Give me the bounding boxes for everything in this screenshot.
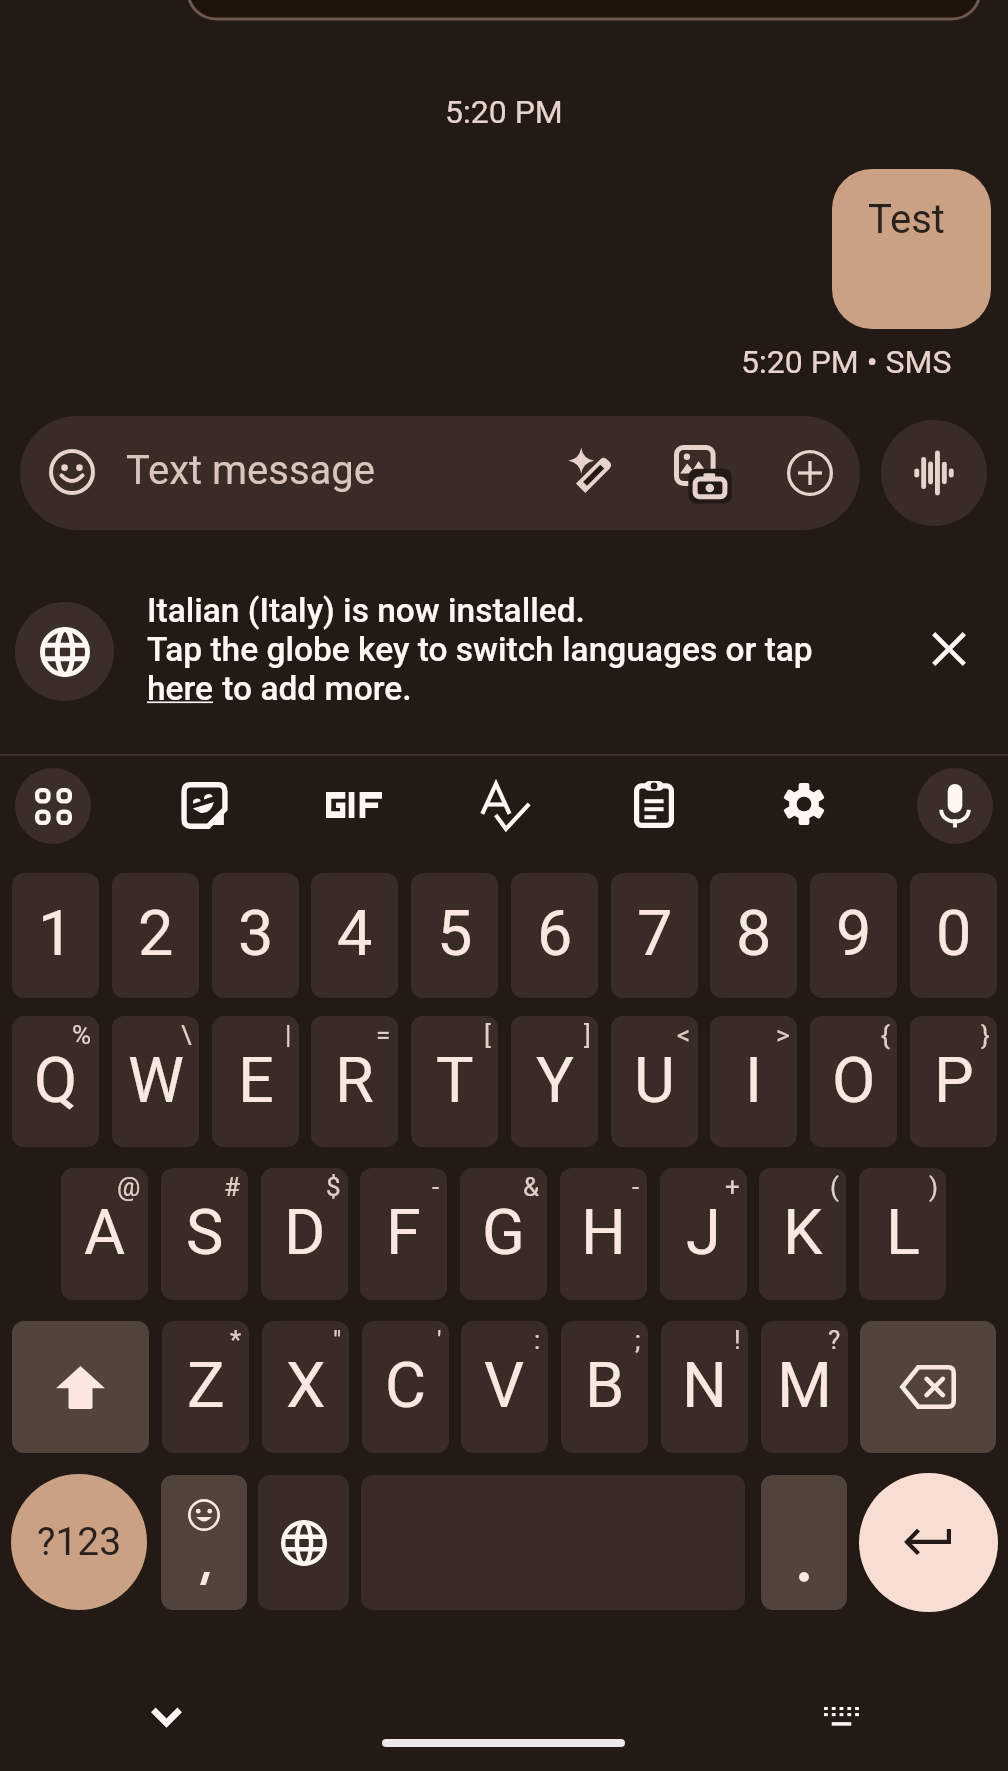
button[interactable]: E [212, 1016, 299, 1147]
button[interactable]: O [810, 1016, 897, 1147]
button[interactable]: W [112, 1016, 199, 1147]
staticText: > [776, 1020, 790, 1050]
button[interactable]: 5 [411, 873, 498, 998]
staticText: D [284, 1196, 326, 1270]
button[interactable]: H [560, 1168, 647, 1300]
staticText: G [482, 1196, 525, 1270]
staticText: 9 [836, 897, 872, 971]
button[interactable]: Voice message [881, 420, 987, 526]
staticText: Test [868, 196, 945, 243]
staticText: Text message [126, 447, 376, 494]
staticText: 6 [537, 897, 573, 971]
button[interactable]: 0 [910, 873, 997, 998]
staticText: E [238, 1044, 274, 1118]
button[interactable]: Switch language [258, 1475, 349, 1610]
button[interactable]: Emoji [49, 449, 95, 495]
button[interactable]: U [611, 1016, 698, 1147]
button[interactable]: C [362, 1321, 449, 1453]
button[interactable]: P [910, 1016, 997, 1147]
staticText: 5 [437, 897, 473, 971]
button[interactable]: A [61, 1168, 148, 1300]
button[interactable]: X [262, 1321, 349, 1453]
button[interactable]: Switch keyboard [824, 1707, 859, 1728]
button[interactable]: D [261, 1168, 348, 1300]
staticText: % [72, 1020, 92, 1050]
button[interactable]: 2 [112, 873, 199, 998]
button[interactable]: 4 [311, 873, 398, 998]
button[interactable]: S [161, 1168, 248, 1300]
button[interactable]: Voice input [917, 768, 993, 844]
button[interactable]: L [859, 1168, 946, 1300]
button[interactable]: Magic compose [568, 446, 617, 495]
button[interactable]: N [661, 1321, 748, 1453]
staticText: F [386, 1196, 421, 1270]
staticText: " [333, 1325, 342, 1355]
button[interactable]: Settings [783, 783, 825, 825]
staticText: ] [584, 1020, 591, 1050]
button[interactable]: Q [12, 1016, 99, 1147]
staticText: ; [635, 1325, 641, 1355]
staticText: U [634, 1044, 675, 1118]
button[interactable]: K [759, 1168, 846, 1300]
button[interactable]: Enter [859, 1473, 998, 1612]
button[interactable]: Grammar check [481, 782, 531, 830]
button[interactable]: 9 [810, 873, 897, 998]
button[interactable]: Period [761, 1475, 847, 1610]
button[interactable]: Dismiss [933, 633, 965, 665]
staticText: T [436, 1044, 474, 1118]
staticText: - [632, 1172, 640, 1202]
button[interactable]: 8 [710, 873, 797, 998]
staticText: 2 [138, 897, 174, 971]
button[interactable]: 7 [611, 873, 698, 998]
staticText: 5:20 PM • SMS [741, 343, 952, 381]
staticText: A [84, 1196, 126, 1270]
button[interactable]: R [311, 1016, 398, 1147]
button[interactable] [320, 786, 388, 826]
button[interactable]: Open features menu [15, 768, 91, 844]
staticText: B [585, 1349, 625, 1423]
staticText: K [783, 1196, 823, 1270]
button[interactable]: Hide keyboard [150, 1700, 183, 1733]
button[interactable]: Clipboard [634, 781, 674, 828]
button[interactable]: G [460, 1168, 547, 1300]
staticText: Y [536, 1044, 574, 1118]
button[interactable]: Z [162, 1321, 249, 1453]
button[interactable] [20, 416, 860, 530]
staticText: @ [117, 1172, 141, 1202]
button[interactable]: Backspace [860, 1321, 996, 1453]
button[interactable]: ?123 [11, 1474, 147, 1610]
button[interactable]: 3 [212, 873, 299, 998]
button[interactable]: Stickers [181, 782, 228, 829]
button[interactable]: 6 [511, 873, 598, 998]
staticText: & [523, 1172, 540, 1202]
button[interactable]: Comma [161, 1475, 247, 1610]
button[interactable]: Add attachment [787, 450, 833, 496]
button[interactable]: Language [15, 602, 114, 701]
button[interactable]: F [360, 1168, 447, 1300]
button[interactable]: Shift [12, 1321, 149, 1453]
staticText: + [725, 1172, 740, 1202]
button[interactable]: I [710, 1016, 797, 1147]
button[interactable]: T [411, 1016, 498, 1147]
button[interactable]: 1 [12, 873, 99, 998]
staticText: W [128, 1044, 184, 1118]
button[interactable]: V [461, 1321, 548, 1453]
staticText: I [745, 1044, 763, 1118]
button[interactable]: B [561, 1321, 648, 1453]
staticText: ( [830, 1172, 839, 1202]
button[interactable]: Test [832, 169, 991, 329]
button[interactable]: J [660, 1168, 747, 1300]
staticText: C [385, 1349, 427, 1423]
staticText: * [230, 1325, 242, 1355]
staticText: # [224, 1172, 241, 1202]
staticText: { [881, 1020, 890, 1050]
button[interactable]: Gallery [674, 445, 728, 500]
staticText: : [534, 1325, 541, 1355]
staticText: < [677, 1020, 691, 1050]
staticText: P [934, 1044, 974, 1118]
button[interactable]: M [761, 1321, 848, 1453]
button[interactable]: Y [511, 1016, 598, 1147]
staticText: Q [34, 1044, 78, 1118]
staticText: ? [828, 1325, 841, 1355]
